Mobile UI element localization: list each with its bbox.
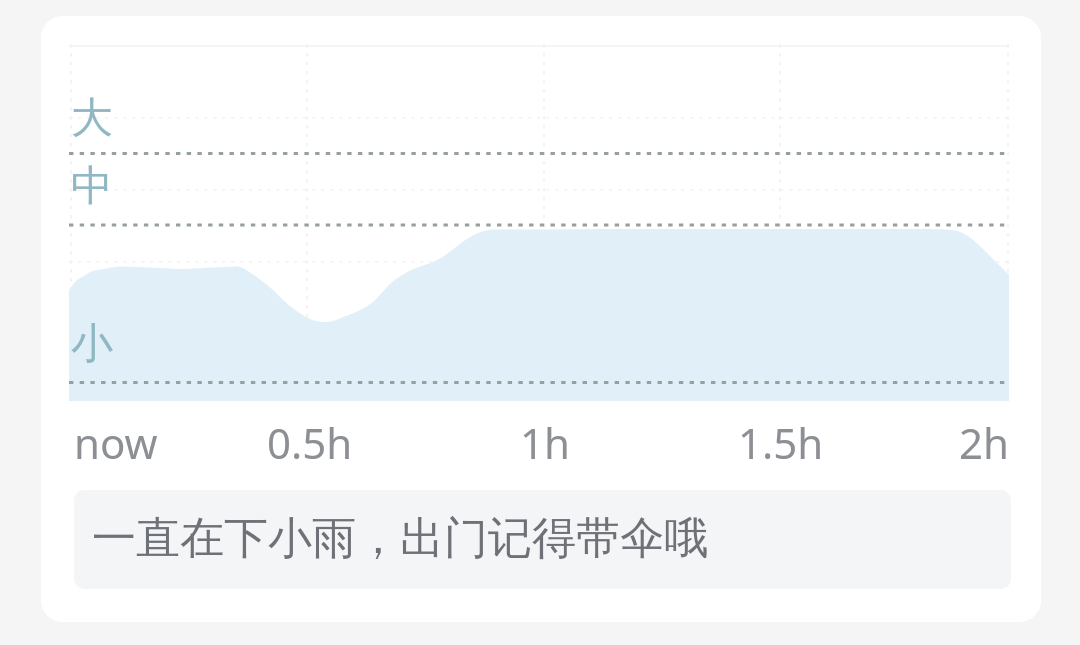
- button[interactable]: 未来两小时降雨趋势: [41, 16, 1041, 622]
- staticText: 1.5h: [738, 414, 824, 471]
- staticText: 2h: [959, 414, 1009, 471]
- staticText: 一直在下小雨，出门记得带伞哦: [92, 511, 708, 566]
- button[interactable]: 一直在下小雨，出门记得带伞哦: [74, 490, 1011, 589]
- staticText: now: [74, 414, 158, 471]
- staticText: 中: [71, 160, 113, 213]
- staticText: 1h: [520, 414, 570, 471]
- staticText: 小: [71, 318, 113, 371]
- staticText: 0.5h: [267, 414, 353, 471]
- staticText: 大: [71, 92, 113, 145]
